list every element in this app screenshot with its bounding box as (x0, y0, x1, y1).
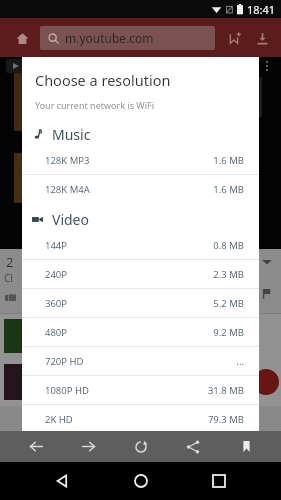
staticText: 31.8 MB (207, 384, 244, 397)
button[interactable]: 240P (22, 260, 259, 288)
button[interactable]: Recents (202, 464, 236, 498)
button[interactable]: Back (19, 431, 53, 462)
staticText: 480P (45, 326, 68, 339)
staticText: 720P HD (45, 355, 84, 368)
staticText: Cl (4, 271, 13, 285)
staticText: 240P (45, 268, 68, 281)
staticText: 2K HD (45, 413, 73, 426)
button[interactable]: Record (253, 369, 279, 395)
button[interactable]: 128K MP3 (22, 146, 259, 174)
staticText: 1.6 MB (213, 183, 244, 196)
staticText: 360P (45, 297, 68, 310)
button[interactable]: 1080P HD (22, 376, 259, 404)
staticText: 128K M4A (45, 183, 90, 196)
button[interactable]: Home (8, 24, 36, 52)
button[interactable]: Back (45, 464, 79, 498)
staticText: 2.3 MB (213, 268, 244, 281)
staticText: 1.6 MB (213, 154, 244, 167)
staticText: m.youtube.com (65, 30, 154, 46)
button[interactable]: 128K M4A (22, 175, 259, 203)
staticText: Choose a resolution (35, 70, 171, 90)
staticText: 128K MP3 (45, 154, 90, 167)
button[interactable]: m.youtube.com (40, 26, 215, 50)
button[interactable]: 720P HD (22, 347, 259, 375)
staticText: Your current network is WiFi (35, 99, 154, 111)
staticText: 79.3 MB (207, 413, 244, 426)
staticText: 2 (6, 253, 14, 271)
button[interactable]: Reload (124, 431, 158, 462)
button[interactable]: 360P (22, 289, 259, 317)
staticText: 5.2 MB (213, 297, 244, 310)
button[interactable]: Home (124, 464, 158, 498)
button[interactable]: Forward (71, 431, 105, 462)
button[interactable]: Share (176, 431, 210, 462)
staticText: ... (236, 355, 244, 368)
staticText: 18:41 (247, 2, 276, 17)
button[interactable]: Bookmarks (229, 431, 263, 462)
button[interactable]: Music (22, 122, 259, 146)
staticText: Video (52, 210, 89, 229)
staticText: Music (52, 125, 91, 144)
button[interactable]: 2K HD (22, 405, 259, 433)
button[interactable]: Video (22, 207, 259, 231)
staticText: 144P (45, 239, 68, 252)
button[interactable]: 480P (22, 318, 259, 346)
button[interactable]: Add bookmark (221, 25, 247, 51)
staticText: 1080P HD (45, 384, 89, 397)
staticText: 0.8 MB (213, 239, 244, 252)
button[interactable]: 144P (22, 231, 259, 259)
staticText: 9.2 MB (213, 326, 244, 339)
button[interactable]: Downloads (249, 25, 275, 51)
